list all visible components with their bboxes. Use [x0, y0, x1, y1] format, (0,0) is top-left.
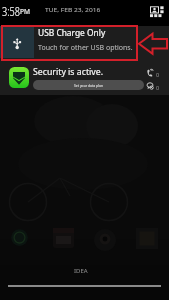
button[interactable] — [9, 67, 29, 88]
staticText: TUE, FEB 23, 2016 — [45, 6, 101, 14]
button[interactable]: Set your data plan — [33, 80, 144, 90]
button[interactable]: Missed calls — [147, 69, 153, 77]
button[interactable]: Notification icons — [149, 5, 165, 17]
staticText: PM — [20, 6, 31, 16]
staticText: Set your data plan — [74, 83, 103, 88]
staticText: USB Charge Only — [38, 27, 106, 38]
staticText: Touch for other USB options. — [38, 43, 133, 53]
staticText: Security is active. — [33, 66, 104, 78]
staticText: IDEA — [74, 267, 88, 275]
button[interactable]: USB Charge Only — [0, 26, 169, 58]
staticText: 0 — [156, 71, 160, 78]
staticText: 3:58 — [2, 3, 20, 19]
staticText: 0 — [156, 84, 160, 91]
button[interactable]: Unread messages — [147, 82, 153, 90]
